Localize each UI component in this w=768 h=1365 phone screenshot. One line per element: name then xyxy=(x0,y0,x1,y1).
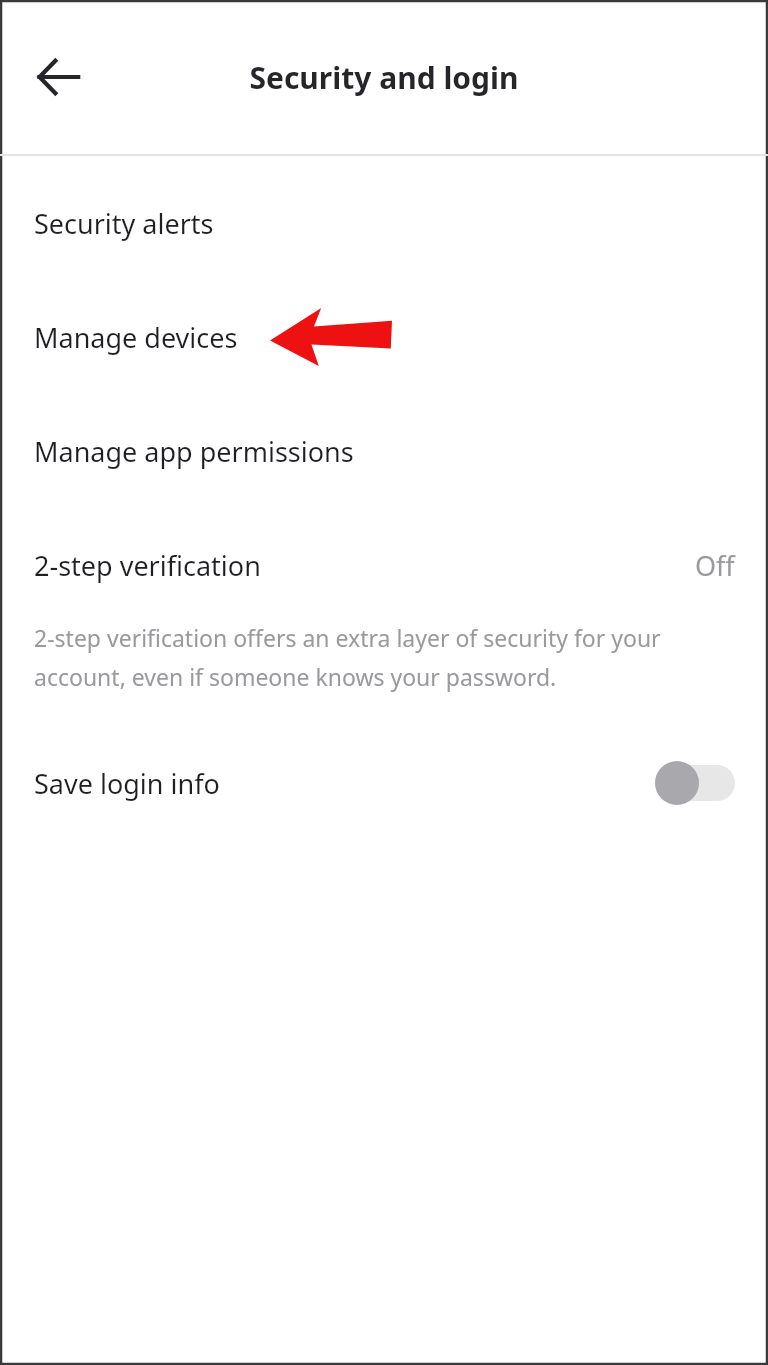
button[interactable]: Save login info xyxy=(0,745,768,821)
staticText: Security alerts xyxy=(34,205,214,242)
button[interactable]: Manage app permissions xyxy=(0,394,768,508)
button[interactable]: 2-step verification xyxy=(0,508,768,622)
button[interactable]: Manage devices xyxy=(0,280,768,394)
staticText: Manage devices xyxy=(34,319,238,356)
staticText: Security and login xyxy=(249,57,519,98)
staticText: 2-step verification xyxy=(34,547,261,584)
button[interactable]: Save login info toggle xyxy=(655,761,735,805)
button[interactable]: Security alerts xyxy=(0,166,768,280)
button[interactable]: Back xyxy=(24,43,92,111)
staticText: 2-step verification offers an extra laye… xyxy=(34,622,734,693)
staticText: Manage app permissions xyxy=(34,433,354,470)
staticText: Off xyxy=(695,547,735,584)
staticText: Save login info xyxy=(34,765,220,802)
